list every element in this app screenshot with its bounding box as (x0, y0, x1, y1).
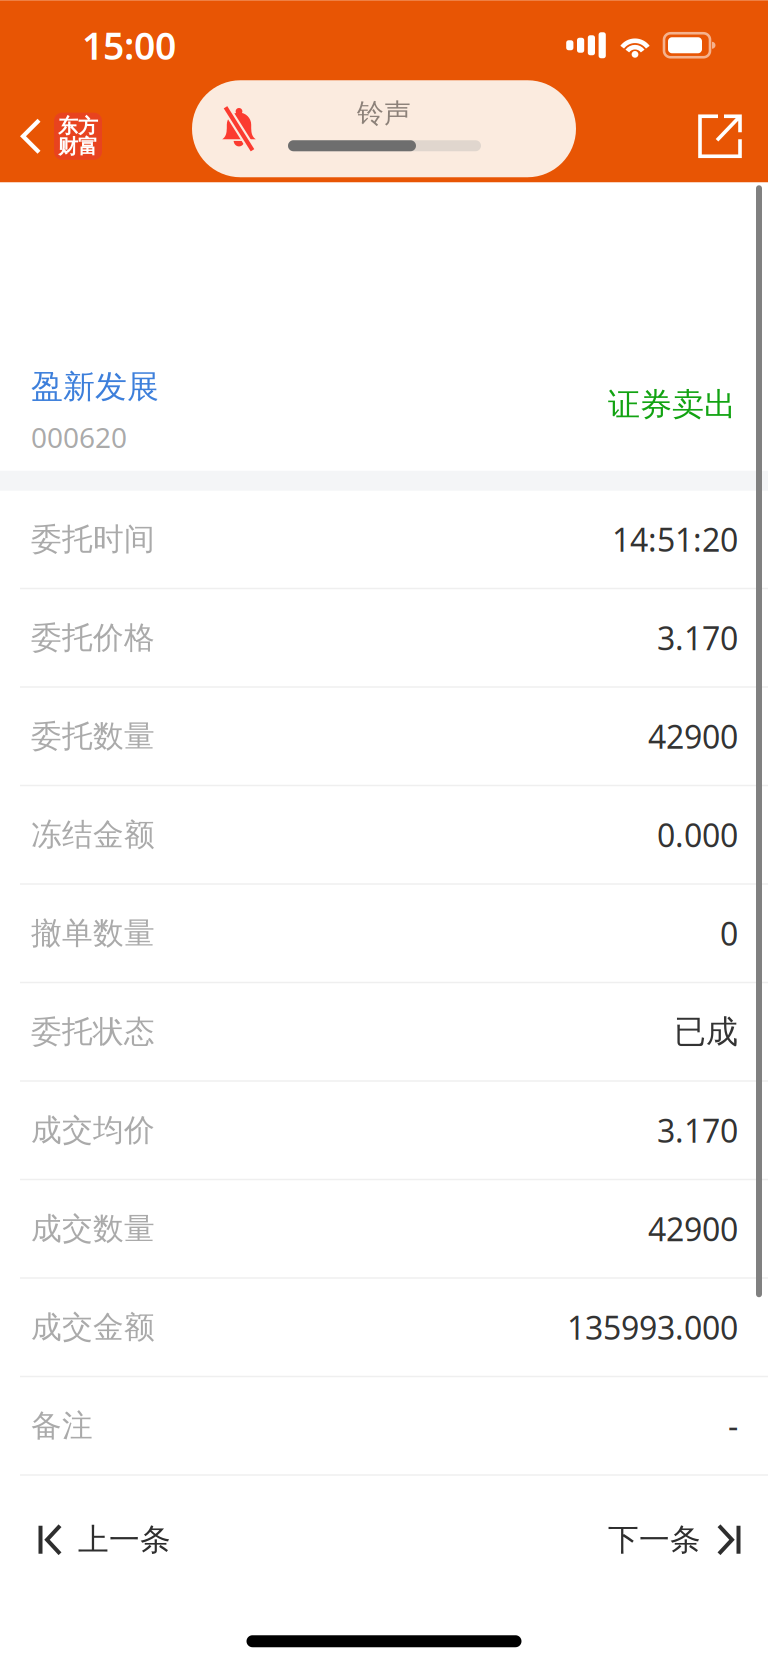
staticText: 42900 (648, 715, 738, 757)
staticText: 135993.000 (567, 1306, 738, 1348)
staticText: 3.170 (657, 616, 738, 659)
staticText: 已成 (674, 1012, 738, 1051)
staticText: 3.170 (657, 1109, 738, 1151)
button[interactable]: 下一条 (588, 1476, 768, 1604)
staticText: 撤单数量 (31, 914, 155, 952)
staticText: 委托状态 (31, 1013, 155, 1051)
staticText: 盈新发展 (31, 367, 159, 407)
button[interactable]: 东方 (0, 90, 116, 182)
staticText: 委托时间 (31, 520, 155, 558)
staticText: 0 (720, 912, 738, 954)
staticText: - (728, 1404, 738, 1447)
staticText: 14:51:20 (612, 518, 738, 560)
staticText: 成交金额 (31, 1308, 155, 1346)
staticText: 42900 (648, 1207, 738, 1250)
staticText: 铃声 (357, 97, 411, 130)
staticText: 成交数量 (31, 1210, 155, 1248)
button[interactable]: Share (672, 90, 768, 182)
staticText: 15:00 (82, 20, 176, 70)
staticText: 冻结金额 (31, 816, 155, 854)
staticText: 下一条 (608, 1521, 701, 1559)
staticText: 备注 (31, 1407, 93, 1445)
staticText: 成交均价 (31, 1111, 155, 1149)
staticText: 委托价格 (31, 619, 155, 657)
staticText: 上一条 (78, 1521, 171, 1559)
staticText: 0.000 (657, 813, 738, 856)
staticText: 东方 (58, 114, 98, 138)
staticText: 证券卖出 (608, 385, 736, 424)
staticText: 财富 (58, 134, 98, 159)
staticText: 000620 (31, 419, 127, 456)
staticText: 委托数量 (31, 717, 155, 755)
button[interactable]: 上一条 (0, 1476, 191, 1604)
